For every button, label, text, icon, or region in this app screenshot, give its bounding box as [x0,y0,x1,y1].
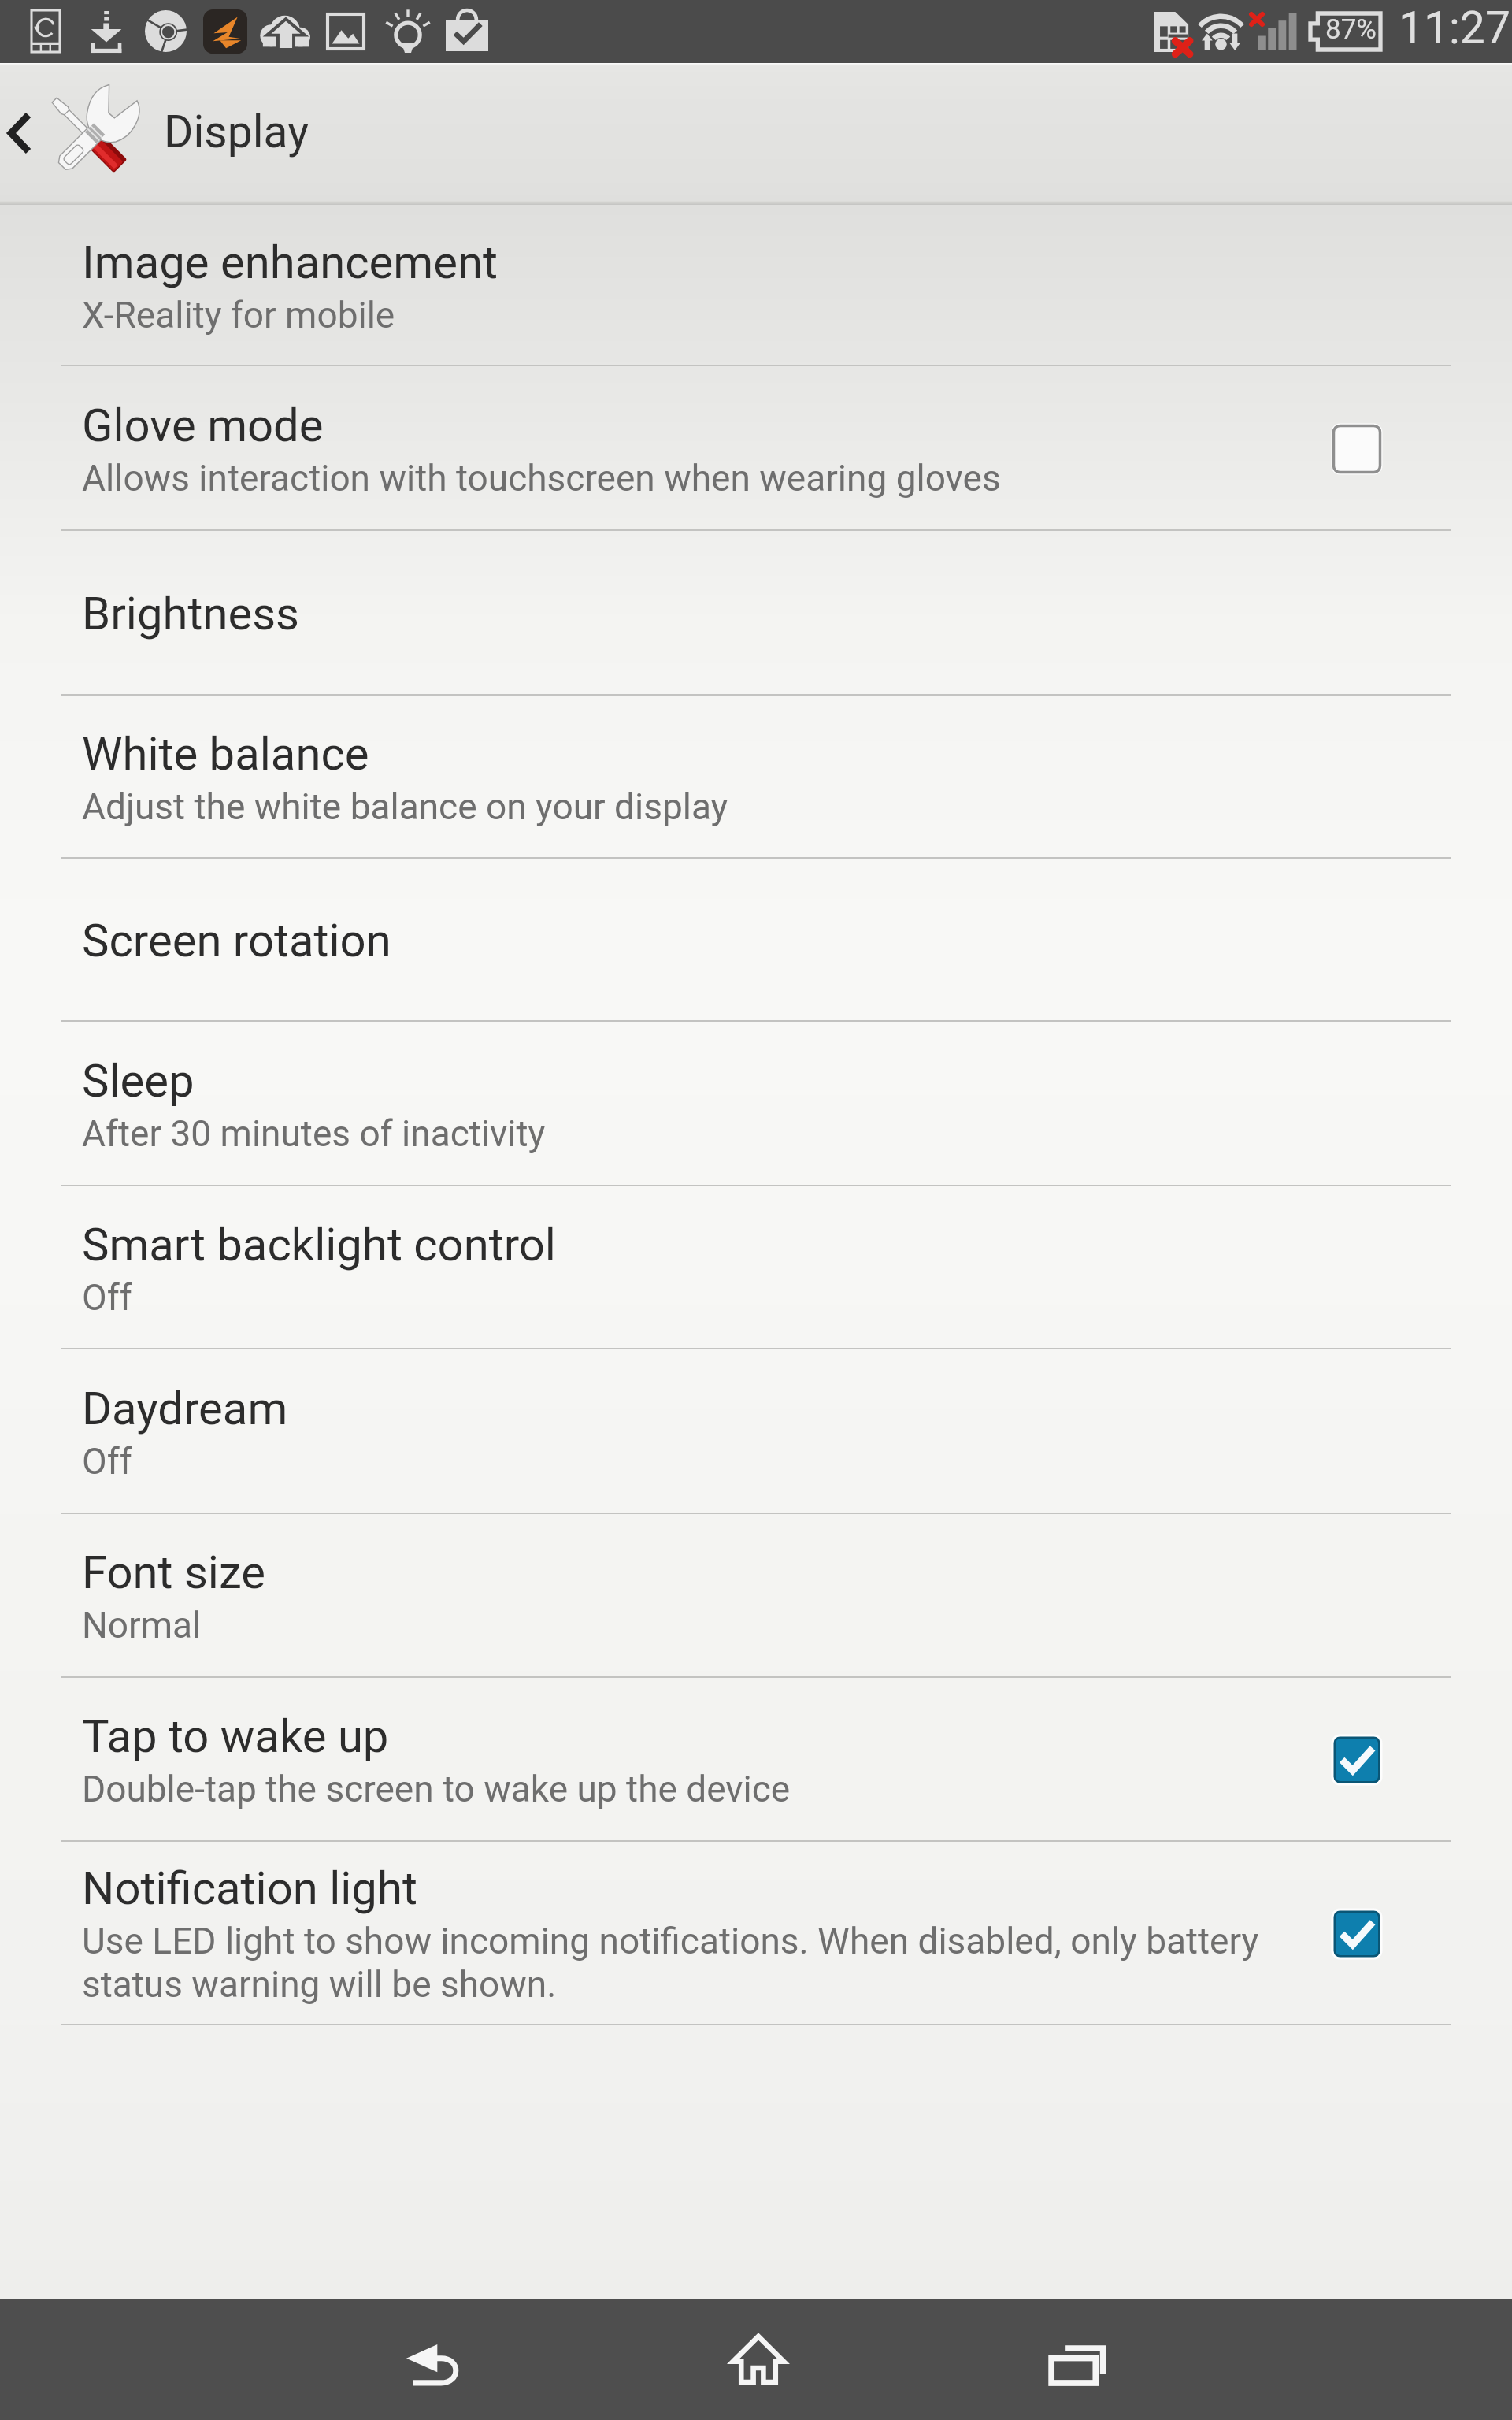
button[interactable]: Glove mode [0,366,1512,531]
button[interactable]: Daydream [0,1349,1512,1514]
button[interactable]: Notification light [1201,1842,1512,2025]
button[interactable]: Tap to wake up [0,1678,1512,1842]
staticText: Display [164,106,309,158]
button[interactable]: Smart backlight control [0,1186,1512,1349]
button[interactable]: Home [669,2299,843,2420]
staticText: 11:27 [1399,2,1510,54]
button[interactable]: Glove mode [1201,366,1512,531]
staticText: Brightness [82,587,300,640]
staticText: Smart backlight control [82,1218,556,1271]
button[interactable]: Back [346,2299,520,2420]
staticText: Sleep [82,1054,195,1108]
button[interactable]: Tap to wake up [1201,1678,1512,1842]
button[interactable]: Image enhancement [0,205,1512,366]
button[interactable]: Notification light [0,1842,1512,2025]
staticText: Adjust the white balance on your display [82,785,728,828]
button[interactable]: Sleep [0,1022,1512,1186]
staticText: Double-tap the screen to wake up the dev… [82,1768,791,1810]
staticText: Off [82,1276,132,1319]
staticText: X-Reality for mobile [82,294,395,336]
staticText: Screen rotation [82,914,391,967]
staticText: Normal [82,1604,202,1646]
staticText: 87% [1325,13,1377,46]
staticText: Image enhancement [82,236,498,289]
button[interactable]: Font size [0,1514,1512,1678]
staticText: Tap to wake up [82,1709,389,1763]
staticText: Off [82,1440,132,1483]
button[interactable]: Screen rotation [0,859,1512,1022]
button[interactable]: Brightness [0,531,1512,696]
staticText: Notification light [82,1861,417,1915]
staticText: Glove mode [82,399,324,452]
button[interactable]: White balance [0,696,1512,859]
staticText: Use LED light to show incoming notificat… [82,1920,1284,2006]
staticText: After 30 minutes of inactivity [82,1112,546,1155]
button[interactable]: Navigate up [0,63,60,205]
staticText: White balance [82,727,369,781]
staticText: Daydream [82,1382,288,1435]
staticText: Allows interaction with touchscreen when… [82,457,1001,499]
staticText: Font size [82,1546,266,1599]
button[interactable]: Recent apps [992,2299,1165,2420]
